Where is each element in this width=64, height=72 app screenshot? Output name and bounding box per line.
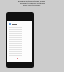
staticText: Default Sounds Settings <box>20 2 45 4</box>
staticText: and Alerts Today <box>23 4 41 6</box>
button[interactable] <box>9 23 17 25</box>
staticText: Enable Notifications From <box>18 0 46 2</box>
